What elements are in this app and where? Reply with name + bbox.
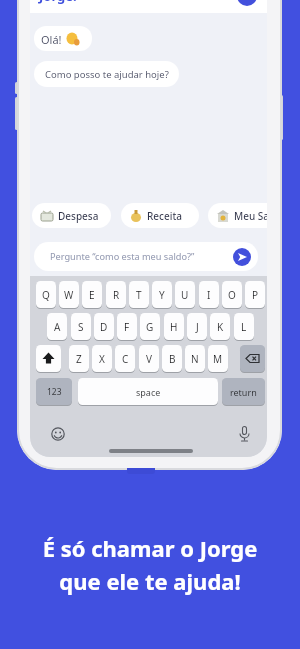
staticText: P: [252, 288, 259, 302]
button[interactable]: Q: [36, 281, 56, 308]
staticText: M: [213, 352, 223, 366]
button[interactable]: G: [140, 313, 160, 340]
staticText: V: [146, 352, 152, 366]
button[interactable]: Y: [152, 281, 172, 308]
staticText: J: [196, 320, 199, 334]
staticText: T: [136, 288, 142, 302]
staticText: X: [99, 352, 105, 366]
button[interactable]: D: [94, 313, 114, 340]
button[interactable]: K: [210, 313, 230, 340]
staticText: O: [228, 288, 236, 302]
button[interactable]: [36, 345, 61, 372]
button[interactable]: [36, 378, 72, 405]
staticText: 123: [47, 386, 62, 398]
staticText: E: [89, 288, 95, 302]
staticText: R: [113, 288, 120, 302]
button[interactable]: B: [162, 345, 182, 372]
staticText: return: [230, 386, 257, 398]
button[interactable]: L: [234, 313, 254, 340]
staticText: U: [181, 288, 189, 302]
staticText: É só chamar o Jorge: [0, 533, 300, 563]
button[interactable]: [237, 0, 257, 6]
staticText: Receita: [147, 209, 182, 223]
staticText: Olá!: [41, 32, 62, 47]
staticText: Meu Saldo: [234, 209, 267, 223]
staticText: N: [191, 352, 199, 366]
staticText: Pergunte “como esta meu saldo?”: [50, 250, 195, 263]
staticText: F: [124, 320, 130, 334]
staticText: Despesa: [58, 209, 99, 223]
button[interactable]: Receita: [121, 203, 199, 228]
staticText: Como posso te ajudar hoje?: [45, 68, 169, 81]
staticText: S: [78, 320, 84, 334]
staticText: H: [170, 320, 178, 334]
button[interactable]: P: [245, 281, 265, 308]
staticText: K: [217, 320, 224, 334]
staticText: C: [122, 352, 129, 366]
button[interactable]: A: [47, 313, 67, 340]
button[interactable]: N: [185, 345, 205, 372]
button[interactable]: Z: [69, 345, 89, 372]
button[interactable]: I: [199, 281, 219, 308]
button[interactable]: E: [82, 281, 102, 308]
button[interactable]: X: [92, 345, 112, 372]
staticText: I: [207, 288, 211, 302]
button[interactable]: J: [187, 313, 207, 340]
button[interactable]: [240, 345, 265, 372]
button[interactable]: R: [106, 281, 126, 308]
staticText: B: [169, 352, 176, 366]
staticText: W: [64, 288, 74, 302]
staticText: que ele te ajuda!: [0, 566, 300, 596]
button[interactable]: O: [222, 281, 242, 308]
staticText: Jorge!: [39, 0, 77, 5]
button[interactable]: V: [139, 345, 159, 372]
button[interactable]: [233, 248, 251, 266]
staticText: L: [241, 320, 247, 334]
button[interactable]: M: [208, 345, 228, 372]
staticText: D: [100, 320, 108, 334]
button[interactable]: Meu Saldo: [208, 203, 267, 228]
button[interactable]: [222, 378, 265, 405]
staticText: Z: [76, 352, 82, 366]
staticText: space: [136, 386, 161, 398]
button[interactable]: T: [129, 281, 149, 308]
button[interactable]: [78, 378, 218, 405]
button[interactable]: C: [115, 345, 135, 372]
button[interactable]: W: [59, 281, 79, 308]
button[interactable]: S: [71, 313, 91, 340]
staticText: A: [54, 320, 61, 334]
button[interactable]: Despesa: [32, 203, 111, 228]
staticText: Q: [42, 288, 50, 302]
button[interactable]: Pergunte “como esta meu saldo?”: [34, 242, 258, 271]
staticText: G: [146, 320, 154, 334]
button[interactable]: F: [117, 313, 137, 340]
staticText: Y: [159, 288, 165, 302]
button[interactable]: U: [175, 281, 195, 308]
button[interactable]: H: [164, 313, 184, 340]
